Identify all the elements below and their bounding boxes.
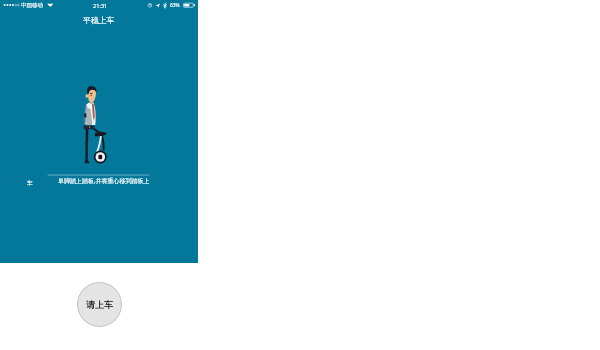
staticText: 21:31 [93,2,108,10]
staticText: 63% [170,2,180,9]
staticText: 车 [27,179,33,186]
staticText: 平稳上车 [83,15,115,25]
staticText: 单脚踏上踏板,并将重心移到踏板上 [58,177,150,185]
staticText: 中国移动 [21,2,43,9]
staticText: 请上车 [86,299,113,310]
button[interactable]: 请上车 [77,282,122,327]
